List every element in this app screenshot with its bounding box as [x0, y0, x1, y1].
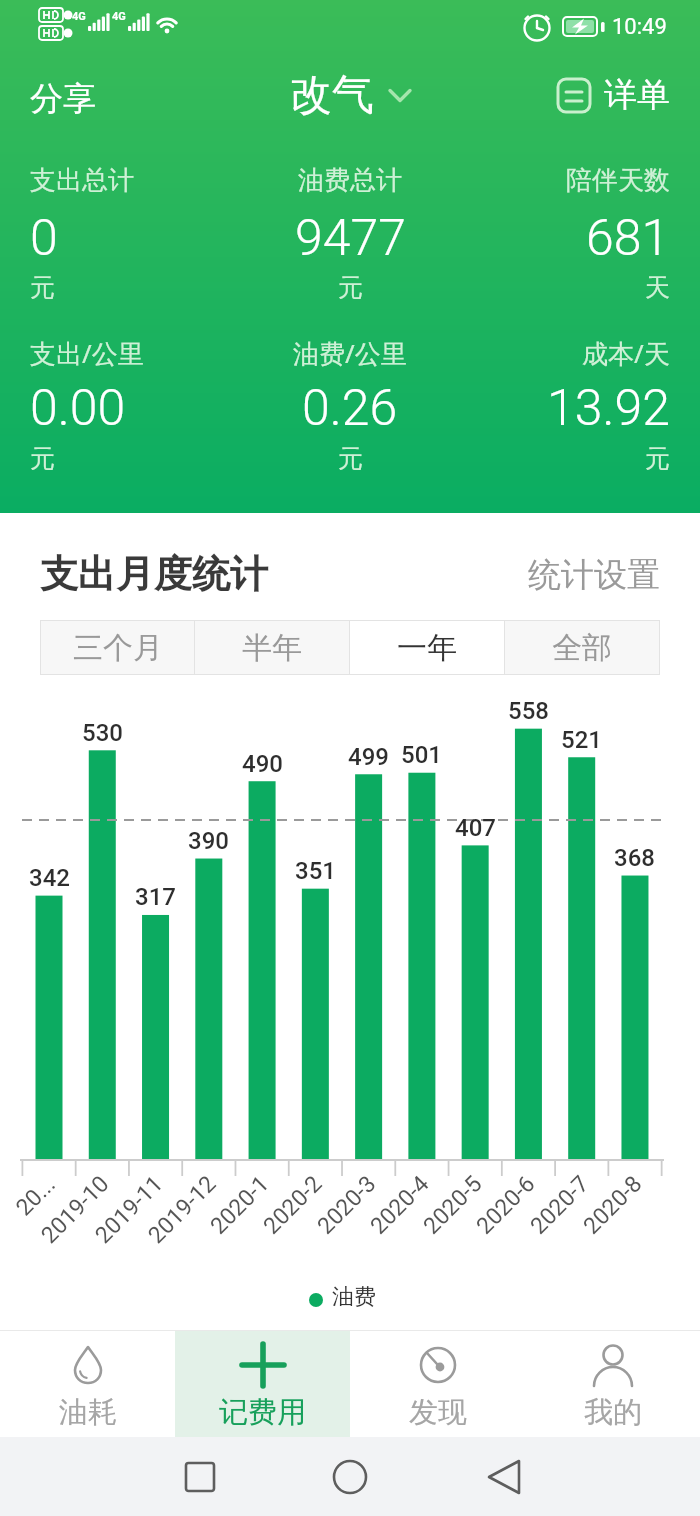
button[interactable] — [467, 1437, 700, 1516]
staticText: 317 — [135, 883, 176, 911]
staticText: 元 — [338, 443, 363, 474]
button[interactable]: 全部 — [505, 621, 659, 674]
staticText: 501 — [401, 741, 442, 769]
staticText: 368 — [614, 844, 655, 872]
staticText: 全部 — [552, 629, 612, 667]
staticText: 支出月度统计 — [40, 550, 268, 598]
button[interactable]: 详单 — [556, 74, 670, 116]
staticText: 2020-1 — [205, 1170, 274, 1240]
staticText: 一年 — [397, 629, 457, 667]
staticText: 三个月 — [73, 629, 163, 667]
staticText: 10:49 — [612, 14, 667, 40]
staticText: 我的 — [584, 1394, 642, 1431]
staticText: 390 — [188, 827, 229, 855]
staticText: 20... — [11, 1170, 61, 1221]
staticText: 13.92 — [547, 379, 670, 438]
staticText: 2020-8 — [578, 1170, 647, 1240]
button[interactable]: 三个月 — [41, 621, 194, 674]
staticText: 陪伴天数 — [566, 164, 670, 197]
staticText: 0.26 — [302, 379, 398, 438]
button[interactable]: 发现 — [350, 1331, 525, 1437]
staticText: 支出总计 — [30, 164, 134, 197]
staticText: 半年 — [242, 629, 302, 667]
staticText: 天 — [645, 272, 670, 303]
staticText: 成本/天 — [582, 335, 670, 371]
button[interactable] — [234, 1437, 467, 1516]
staticText: 2020-5 — [418, 1170, 487, 1240]
staticText: 351 — [295, 857, 336, 885]
button[interactable]: 统计设置 — [460, 554, 660, 596]
staticText: 490 — [242, 750, 283, 778]
button[interactable]: 油耗 — [0, 1331, 175, 1437]
staticText: 油费/公里 — [293, 335, 407, 371]
staticText: 499 — [348, 743, 389, 771]
staticText: 407 — [455, 814, 496, 842]
staticText: 元 — [338, 272, 363, 303]
staticText: 558 — [508, 697, 549, 725]
staticText: 2020-6 — [471, 1170, 540, 1240]
button[interactable]: 记费用 — [175, 1331, 350, 1437]
staticText: 记费用 — [219, 1394, 306, 1431]
staticText: 支出/公里 — [30, 335, 144, 371]
staticText: 元 — [30, 272, 55, 303]
staticText: 详单 — [604, 74, 670, 116]
staticText: 发现 — [409, 1394, 467, 1431]
staticText: 元 — [645, 443, 670, 474]
staticText: 9477 — [295, 209, 406, 268]
staticText: 改气 — [290, 69, 374, 122]
staticText: 530 — [82, 719, 123, 747]
staticText: 2019-12 — [143, 1170, 221, 1249]
staticText: 2019-11 — [90, 1170, 168, 1249]
staticText: 油费总计 — [298, 164, 402, 197]
staticText: 分享 — [30, 78, 96, 120]
staticText: 2020-2 — [258, 1170, 327, 1240]
staticText: 342 — [29, 864, 70, 892]
staticText: 2020-3 — [312, 1170, 381, 1240]
staticText: 4G — [112, 10, 126, 23]
staticText: 681 — [586, 209, 670, 268]
staticText: 2019-10 — [36, 1170, 114, 1249]
staticText: 元 — [30, 443, 55, 474]
staticText: 521 — [561, 726, 602, 754]
staticText: 0 — [30, 209, 58, 268]
staticText: 2020-4 — [365, 1170, 434, 1240]
button[interactable]: 分享 — [30, 78, 96, 120]
staticText: 0.00 — [30, 379, 126, 438]
staticText: 2020-7 — [525, 1170, 594, 1240]
staticText: 统计设置 — [528, 554, 660, 596]
button[interactable]: 改气 — [290, 69, 411, 122]
staticText: 油费 — [332, 1283, 376, 1311]
staticText: 油耗 — [59, 1394, 117, 1431]
button[interactable]: 半年 — [195, 621, 349, 674]
button[interactable]: 我的 — [525, 1331, 700, 1437]
button[interactable]: 一年 — [350, 621, 504, 674]
button[interactable] — [0, 1437, 234, 1516]
staticText: 4G — [72, 10, 86, 23]
